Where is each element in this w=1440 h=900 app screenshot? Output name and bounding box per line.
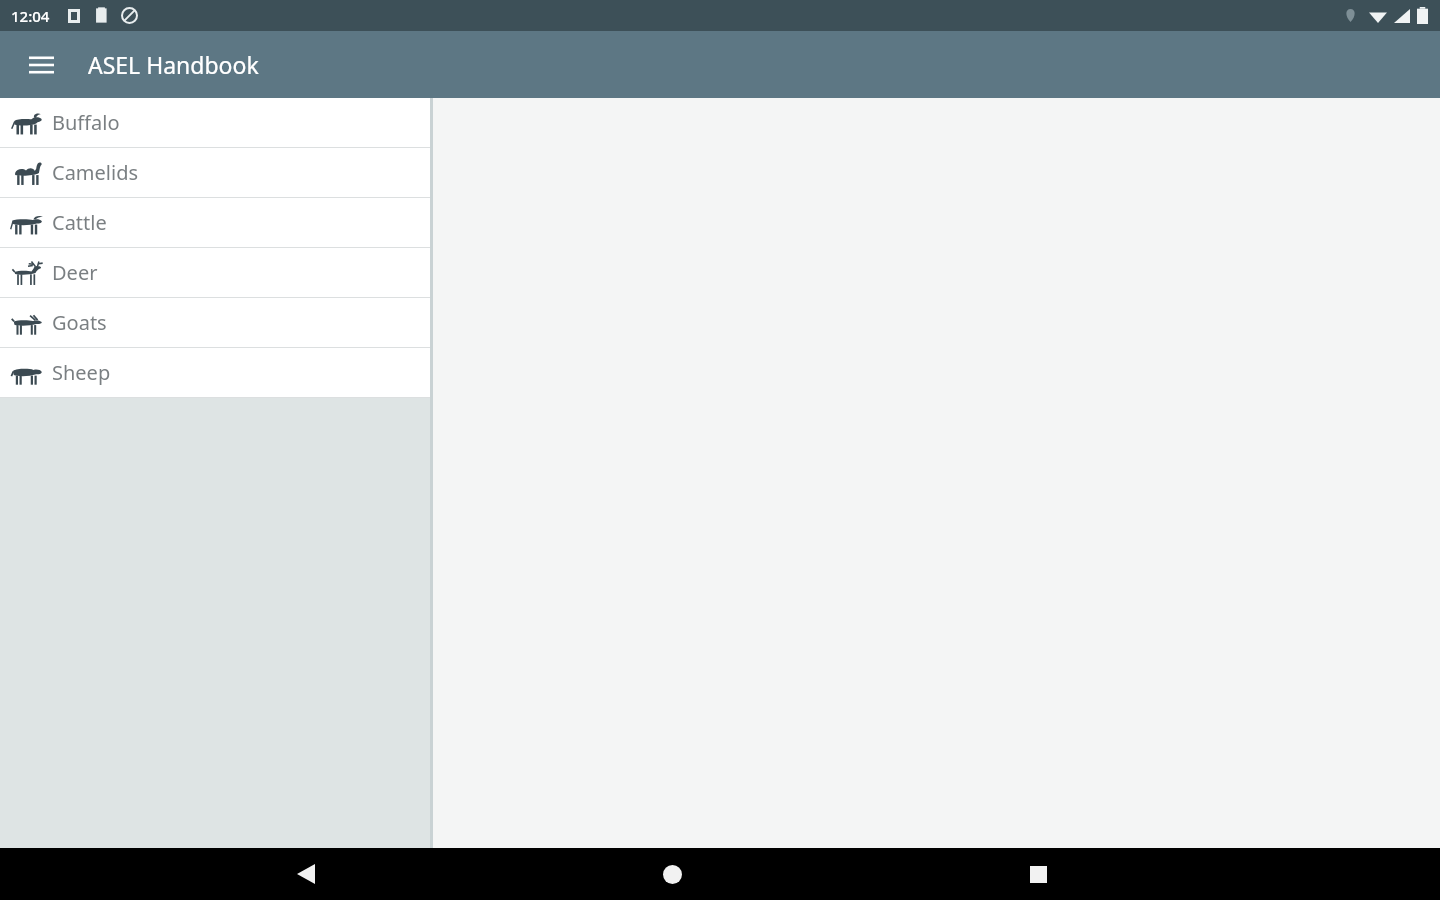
button[interactable]: Camelids [0, 148, 430, 198]
staticText: Deer [52, 259, 98, 286]
button[interactable]: Deer [0, 248, 430, 298]
staticText: Goats [52, 309, 107, 336]
button[interactable]: Open navigation menu [17, 41, 65, 89]
button[interactable]: Home [640, 848, 704, 900]
button[interactable]: Back [274, 848, 338, 900]
staticText: 12:04 [11, 6, 50, 26]
staticText: Buffalo [52, 109, 120, 136]
staticText: ASEL Handbook [88, 49, 259, 80]
button[interactable]: Buffalo [0, 98, 430, 148]
button[interactable]: Sheep [0, 348, 430, 398]
button[interactable]: Goats [0, 298, 430, 348]
staticText: Camelids [52, 159, 139, 186]
button[interactable]: Cattle [0, 198, 430, 248]
button[interactable]: Recent apps [1006, 848, 1070, 900]
staticText: Sheep [52, 359, 111, 386]
staticText: Cattle [52, 209, 107, 236]
